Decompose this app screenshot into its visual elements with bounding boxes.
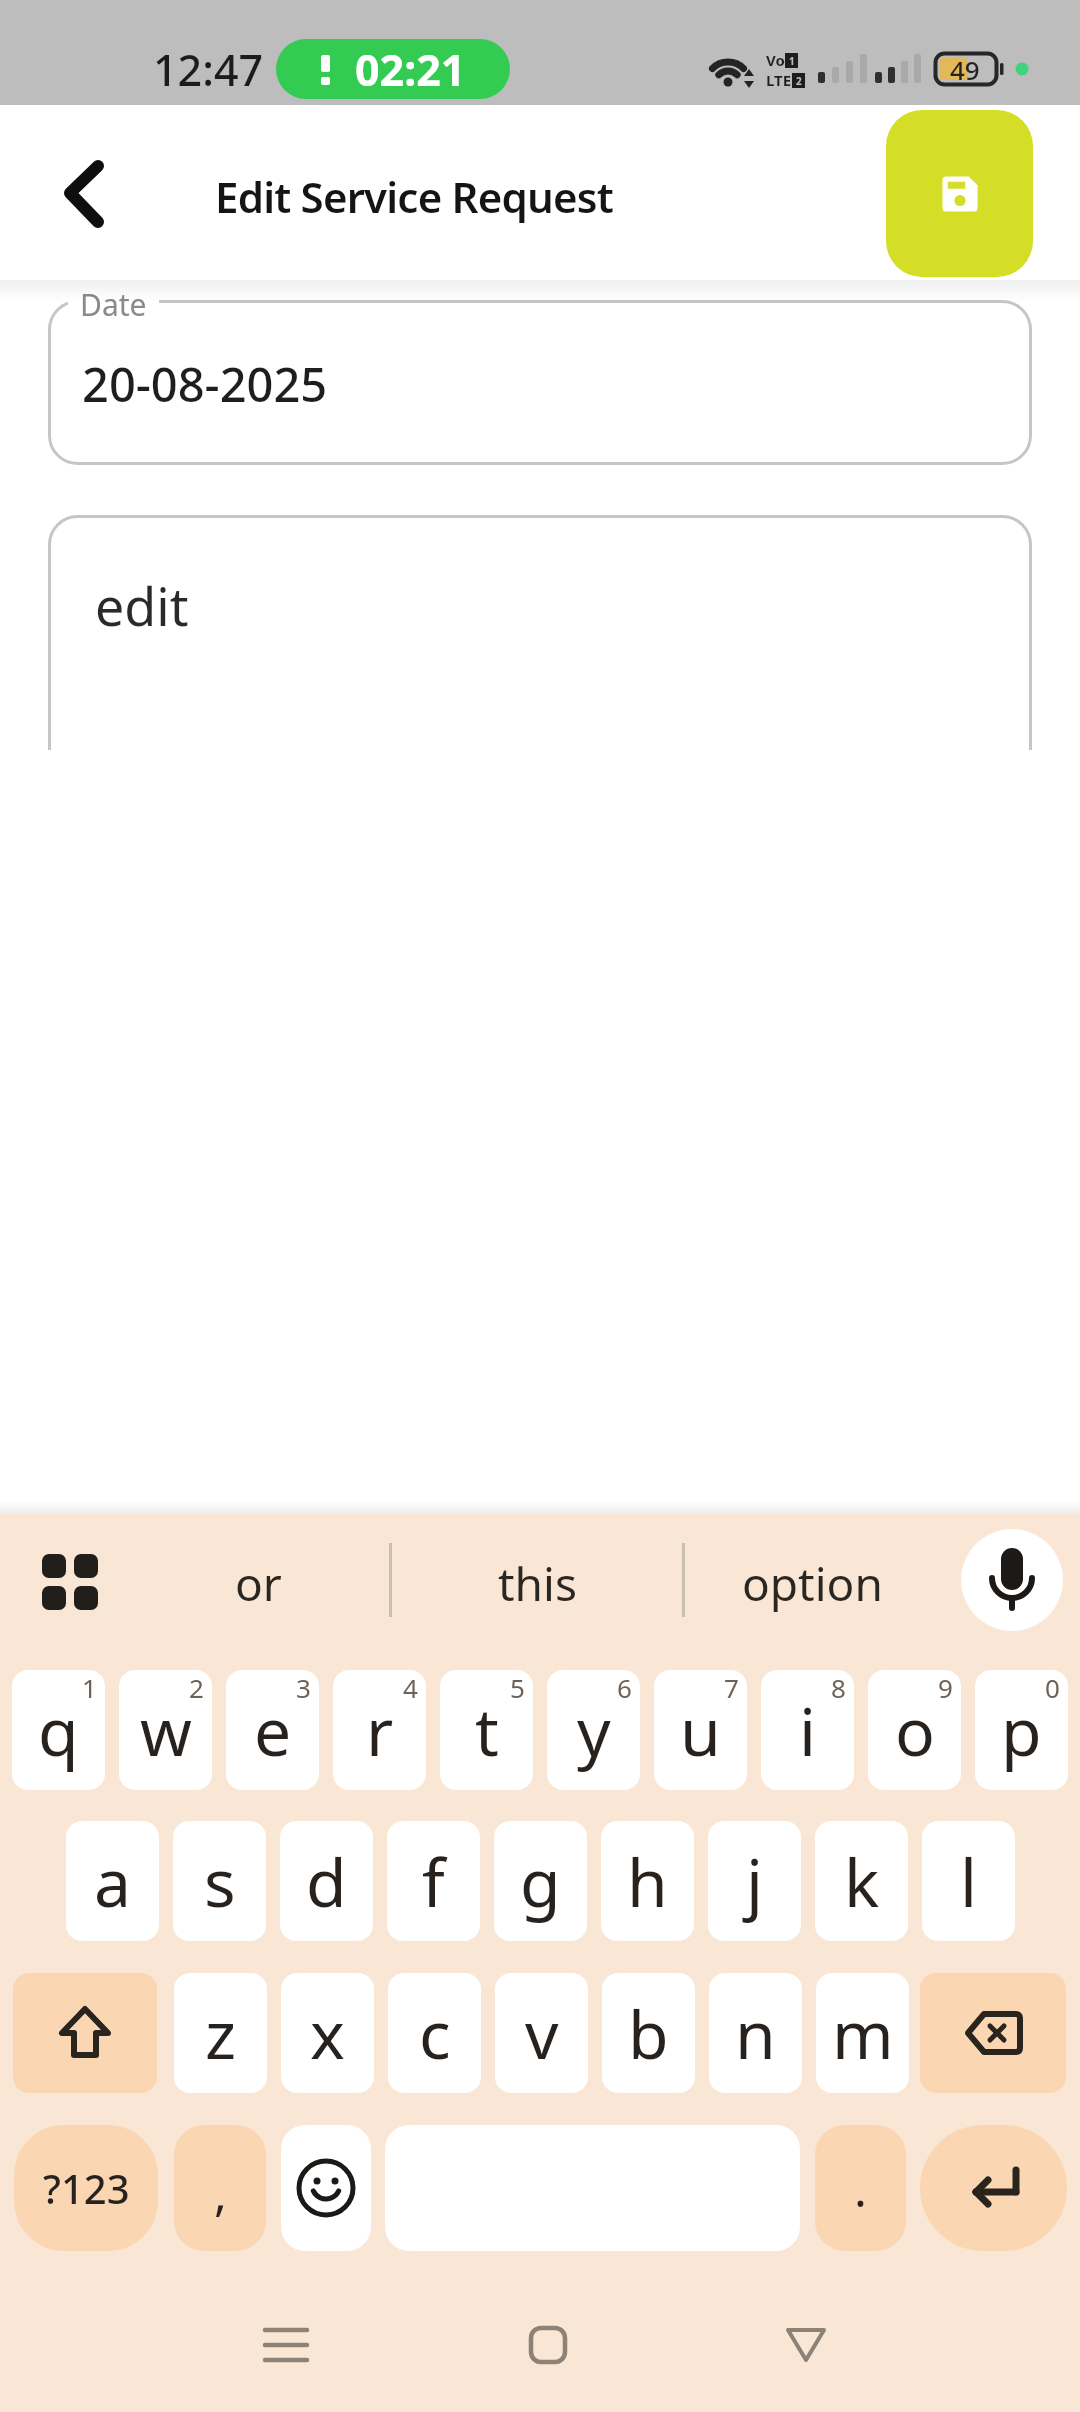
button[interactable] [508,2310,588,2380]
button[interactable]: , [174,2125,266,2251]
button[interactable]: w [119,1670,212,1790]
staticText: s [204,1836,236,1926]
staticText: d [306,1836,347,1926]
button[interactable] [886,110,1033,277]
staticText: 1 [82,1670,97,1705]
staticText: 7 [724,1670,739,1705]
staticText: 12:47 [153,40,264,96]
button[interactable]: k [815,1821,908,1941]
button[interactable]: 02:21 [276,39,510,99]
staticText: q [38,1685,79,1775]
staticText: Vo [766,50,785,70]
staticText: l [960,1836,978,1926]
staticText: j [746,1836,764,1926]
staticText: b [628,1988,669,2078]
button[interactable] [30,1542,110,1622]
staticText: k [844,1836,880,1926]
button[interactable]: ?123 [14,2125,158,2251]
staticText: a [94,1836,132,1926]
button[interactable]: q [12,1670,105,1790]
staticText: t [475,1685,499,1775]
button[interactable]: or [158,1545,358,1621]
button[interactable]: m [816,1973,909,2093]
button[interactable]: y [547,1670,640,1790]
button[interactable]: i [761,1670,854,1790]
staticText: edit [95,570,189,630]
button[interactable] [281,2125,371,2251]
button[interactable]: a [66,1821,159,1941]
staticText: LTE [766,70,792,90]
staticText: w [140,1685,192,1775]
staticText: 2 [189,1670,204,1705]
staticText: or [235,1552,282,1615]
button[interactable]: option [712,1545,912,1621]
button[interactable] [13,1973,157,2093]
staticText: g [520,1836,561,1926]
staticText: 20-08-2025 [82,352,328,408]
button[interactable]: f [387,1821,480,1941]
staticText: 6 [617,1670,632,1705]
staticText: Edit Service Request [215,168,613,225]
button[interactable]: s [173,1821,266,1941]
staticText: 3 [296,1670,311,1705]
staticText: c [419,1988,451,2078]
button[interactable]: n [709,1973,802,2093]
button[interactable]: g [494,1821,587,1941]
button[interactable]: z [174,1973,267,2093]
button[interactable]: l [922,1821,1015,1941]
staticText: 1 [789,54,795,68]
button[interactable]: u [654,1670,747,1790]
staticText: 5 [510,1670,525,1705]
staticText: e [254,1685,292,1775]
staticText: i [799,1685,817,1775]
staticText: o [895,1685,935,1775]
staticText: f [422,1836,445,1926]
staticText: y [577,1685,611,1775]
button[interactable]: t [440,1670,533,1790]
button[interactable]: this [437,1545,637,1621]
staticText: r [366,1685,394,1775]
button[interactable]: . [815,2125,906,2251]
button[interactable]: r [333,1670,426,1790]
staticText: v [525,1988,559,2078]
button[interactable]: d [280,1821,373,1941]
button[interactable] [45,145,125,245]
staticText: m [832,1988,894,2078]
button[interactable]: c [388,1973,481,2093]
staticText: 02:21 [355,40,466,99]
button[interactable] [246,2310,326,2380]
staticText: 8 [831,1670,846,1705]
button[interactable]: h [601,1821,694,1941]
staticText: ?123 [43,2161,130,2215]
staticText: z [205,1988,237,2078]
button[interactable]: x [281,1973,374,2093]
button[interactable]: v [495,1973,588,2093]
button[interactable] [385,2125,800,2251]
staticText: Date [80,284,147,325]
staticText: 9 [938,1670,953,1705]
button[interactable]: j [708,1821,801,1941]
staticText: 2 [796,74,802,88]
staticText: this [498,1552,577,1615]
staticText: , [214,2160,227,2225]
button[interactable] [766,2310,846,2380]
button[interactable]: o [868,1670,961,1790]
button[interactable]: edit [48,515,1032,750]
staticText: p [1001,1685,1042,1775]
button[interactable] [920,2125,1067,2251]
button[interactable]: Date [48,300,1032,465]
button[interactable]: b [602,1973,695,2093]
staticText: 4 [403,1670,418,1705]
button[interactable]: e [226,1670,319,1790]
staticText: 49 [950,52,980,87]
staticText: n [735,1988,776,2078]
button[interactable] [961,1529,1063,1631]
staticText: h [627,1836,668,1926]
button[interactable] [920,1973,1066,2093]
staticText: x [310,1988,345,2078]
staticText: 0 [1045,1670,1060,1705]
button[interactable]: p [975,1670,1068,1790]
staticText: u [680,1685,721,1775]
staticText: . [854,2156,867,2221]
staticText: option [742,1552,883,1615]
